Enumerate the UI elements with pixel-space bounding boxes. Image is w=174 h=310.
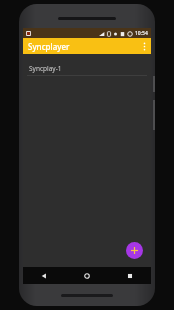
- button[interactable]: Recent apps: [108, 267, 151, 284]
- staticText: 10:54: [135, 30, 148, 37]
- button[interactable]: Add room: [126, 242, 143, 259]
- button[interactable]: Syncplay-1: [23, 61, 151, 76]
- staticText: Syncplayer: [28, 41, 70, 52]
- button[interactable]: Home: [65, 267, 108, 284]
- staticText: Syncplay-1: [29, 64, 62, 73]
- button[interactable]: More options: [138, 38, 150, 54]
- button[interactable]: Back: [23, 267, 65, 284]
